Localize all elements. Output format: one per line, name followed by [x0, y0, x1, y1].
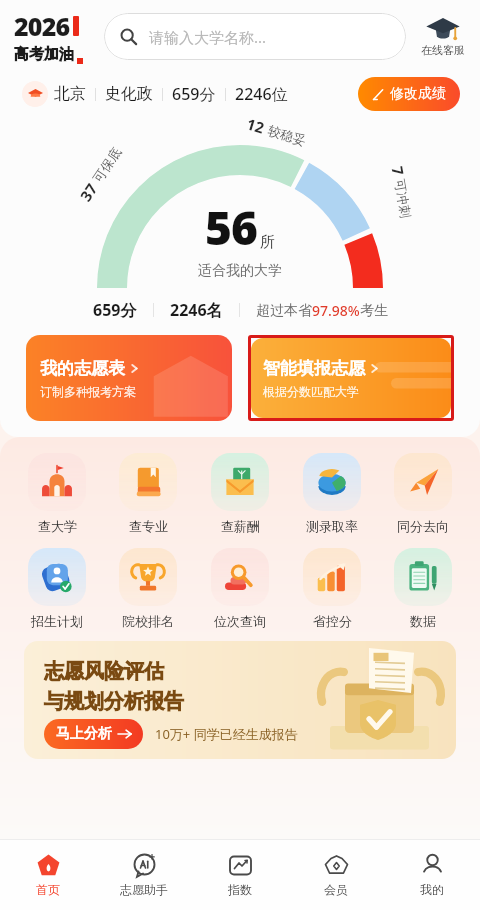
staticText: 马上分析 — [56, 725, 112, 743]
staticText: 12 — [244, 113, 267, 138]
button[interactable]: 查薪酬 — [197, 453, 283, 534]
staticText: 7 — [388, 165, 409, 177]
staticText: 较稳妥 — [266, 122, 308, 149]
staticText: 查大学 — [38, 518, 77, 534]
staticText: 适合我的大学 — [198, 262, 282, 280]
button[interactable]: 院校排名 — [105, 548, 191, 629]
staticText: 超过本省 — [256, 302, 312, 320]
button[interactable]: 志愿助手 — [96, 840, 192, 910]
staticText: 志愿风险评估 — [44, 659, 164, 684]
button[interactable]: 测录取率 — [289, 453, 375, 534]
staticText: 指数 — [228, 882, 252, 897]
staticText: 查专业 — [129, 518, 168, 534]
staticText: 智能填报志愿 — [263, 358, 365, 379]
staticText: 2246位 — [235, 83, 288, 105]
staticText: 我的 — [420, 882, 444, 897]
staticText: 省控分 — [313, 613, 352, 629]
staticText: 2246名 — [170, 299, 223, 321]
button[interactable]: 在线客服 — [414, 16, 472, 57]
staticText: 高考加油 — [14, 45, 74, 64]
staticText: 可保底 — [89, 144, 124, 185]
button[interactable]: 马上分析 — [44, 719, 143, 749]
staticText: 我的志愿表 — [40, 358, 125, 379]
button[interactable]: 智能填报志愿 — [251, 338, 451, 418]
button[interactable]: 指数 — [192, 840, 288, 910]
staticText: 史化政 — [105, 84, 153, 104]
staticText: 37 — [75, 179, 102, 205]
staticText: 在线客服 — [421, 43, 465, 57]
staticText: 56 — [205, 196, 257, 259]
button[interactable]: 北京 — [22, 81, 86, 107]
staticText: 志愿助手 — [120, 882, 168, 897]
button[interactable]: 我的志愿表 — [26, 335, 232, 421]
button[interactable]: 会员 — [288, 840, 384, 910]
staticText: 10万+ 同学已经生成报告 — [155, 725, 298, 743]
staticText: 考生 — [360, 302, 388, 320]
button[interactable]: 招生计划 — [14, 548, 100, 629]
button[interactable]: 修改成绩 — [358, 77, 460, 111]
staticText: 数据 — [410, 613, 436, 629]
button[interactable]: 志愿风险评估 — [24, 641, 456, 759]
staticText: 所 — [260, 233, 275, 252]
staticText: 首页 — [36, 882, 60, 897]
button[interactable]: 数据 — [380, 548, 466, 629]
button[interactable]: 首页 — [0, 840, 96, 910]
staticText: 同分去向 — [397, 518, 449, 534]
button[interactable]: 省控分 — [289, 548, 375, 629]
staticText: 659分 — [93, 299, 137, 321]
staticText: 院校排名 — [122, 613, 174, 629]
button[interactable]: 位次查询 — [197, 548, 283, 629]
staticText: 订制多种报考方案 — [40, 384, 136, 399]
staticText: 请输入大学名称... — [149, 27, 267, 47]
staticText: 2026 — [14, 9, 70, 43]
staticText: 与规划分析报告 — [44, 689, 184, 714]
button[interactable]: 请输入大学名称... — [104, 13, 406, 60]
button[interactable]: 我的 — [384, 840, 480, 910]
staticText: 根据分数匹配大学 — [263, 384, 359, 399]
staticText: 招生计划 — [31, 613, 83, 629]
staticText: 修改成绩 — [390, 85, 446, 103]
staticText: 会员 — [324, 882, 348, 897]
staticText: 可冲刺 — [392, 178, 414, 219]
staticText: 位次查询 — [214, 613, 266, 629]
staticText: 北京 — [54, 84, 86, 104]
staticText: 查薪酬 — [221, 518, 260, 534]
button[interactable]: 查专业 — [105, 453, 191, 534]
button[interactable]: 查大学 — [14, 453, 100, 534]
button[interactable]: 同分去向 — [380, 453, 466, 534]
staticText: 97.98% — [312, 301, 360, 320]
staticText: 测录取率 — [306, 518, 358, 534]
staticText: 659分 — [172, 83, 216, 105]
